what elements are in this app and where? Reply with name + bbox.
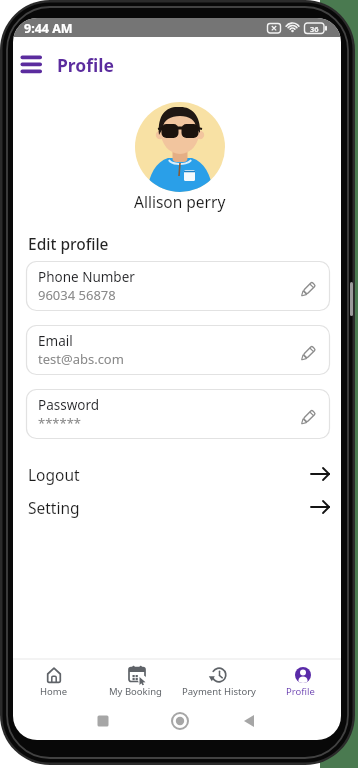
button[interactable]: Logout bbox=[26, 462, 330, 490]
staticText: Edit profile bbox=[28, 233, 109, 254]
staticText: Logout bbox=[28, 464, 80, 485]
staticText: ****** bbox=[38, 414, 81, 432]
staticText: Phone Number bbox=[38, 268, 135, 286]
staticText: Allison perry bbox=[134, 191, 226, 212]
button[interactable] bbox=[96, 660, 178, 698]
staticText: Password bbox=[38, 396, 100, 414]
staticText: Payment History bbox=[182, 685, 256, 698]
staticText: Setting bbox=[28, 497, 80, 518]
staticText: Profile bbox=[286, 685, 315, 698]
button[interactable] bbox=[178, 660, 260, 698]
button[interactable]: Password bbox=[26, 389, 330, 439]
button[interactable]: Setting bbox=[26, 495, 330, 523]
staticText: 36 bbox=[310, 24, 319, 34]
staticText: 96034 56878 bbox=[38, 286, 116, 304]
button[interactable] bbox=[16, 48, 48, 78]
button[interactable] bbox=[260, 660, 342, 698]
button[interactable]: Phone Number bbox=[26, 261, 330, 311]
staticText: 9:44 AM bbox=[24, 20, 73, 37]
staticText: My Booking bbox=[109, 685, 162, 698]
button[interactable] bbox=[14, 660, 96, 698]
staticText: Email bbox=[38, 332, 73, 350]
staticText: test@abs.com bbox=[38, 350, 124, 368]
button[interactable]: Email bbox=[26, 325, 330, 375]
staticText: Home bbox=[40, 685, 68, 698]
staticText: Profile bbox=[57, 53, 114, 77]
